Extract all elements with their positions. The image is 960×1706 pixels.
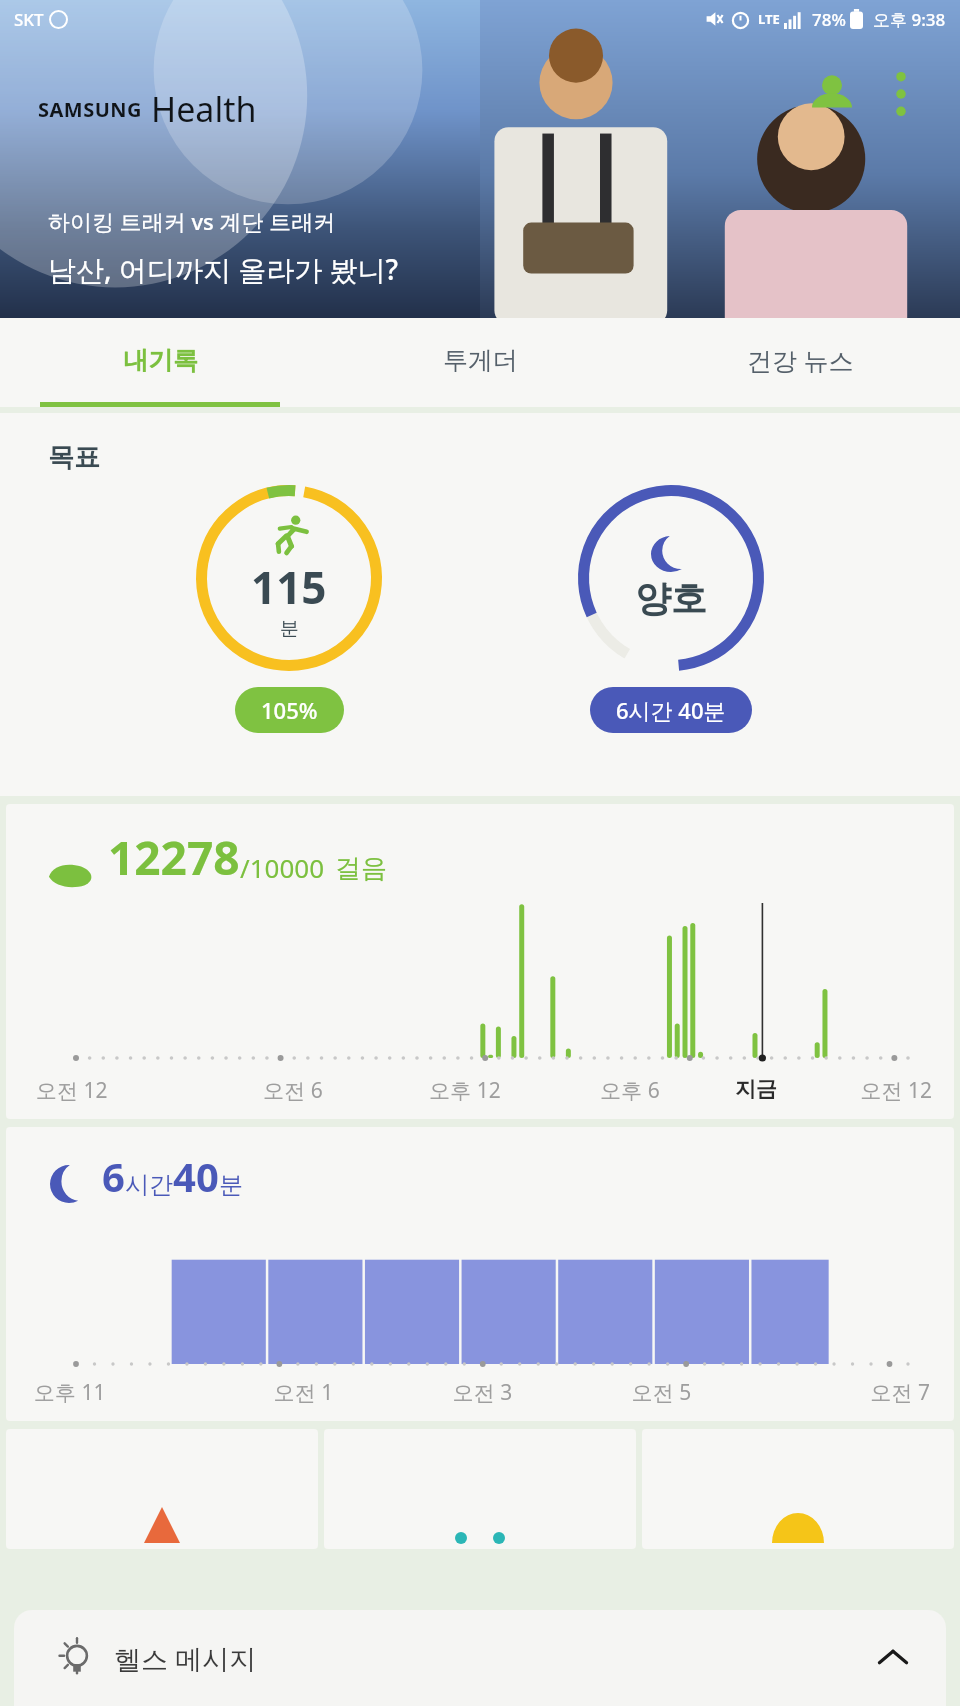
staticText: /10000 bbox=[240, 850, 325, 885]
staticText: 오후 11 bbox=[34, 1378, 214, 1407]
other: More options bbox=[894, 70, 908, 118]
staticText: 지금 bbox=[709, 1076, 803, 1102]
staticText: 오전 12 bbox=[36, 1076, 207, 1105]
button[interactable]: 건강 뉴스 bbox=[640, 318, 960, 402]
staticText: 오전 1 bbox=[214, 1378, 393, 1407]
staticText: 목표 bbox=[48, 441, 100, 474]
staticText: 남산, 어디까지 올라가 봤니? bbox=[48, 250, 399, 288]
staticText: 양호 bbox=[635, 576, 707, 621]
other: Expand bbox=[876, 1641, 910, 1675]
staticText: 6시간 40분 bbox=[616, 695, 726, 725]
staticText: 12278 bbox=[108, 826, 240, 889]
staticText: 분 bbox=[219, 1170, 243, 1200]
staticText: 시간 bbox=[125, 1170, 173, 1200]
staticText: 투게더 bbox=[443, 345, 518, 376]
button[interactable]: 목표 bbox=[0, 413, 960, 796]
staticText: 헬스 메시지 bbox=[114, 1640, 257, 1677]
staticText: 오전 6 bbox=[207, 1076, 379, 1105]
staticText: 오후 6 bbox=[551, 1076, 709, 1105]
staticText: 오전 3 bbox=[393, 1378, 572, 1407]
staticText: 하이킹 트래커 vs 계단 트래커 bbox=[48, 206, 336, 236]
staticText: 오후 12 bbox=[379, 1076, 551, 1105]
button[interactable]: 105% bbox=[235, 687, 344, 733]
staticText: 오전 12 bbox=[803, 1076, 932, 1105]
staticText: 분 bbox=[280, 617, 299, 641]
button[interactable]: 투게더 bbox=[320, 318, 640, 402]
staticText: 6 bbox=[102, 1149, 125, 1203]
button[interactable]: 내기록 bbox=[0, 318, 320, 402]
staticText: 내기록 bbox=[123, 345, 198, 376]
staticText: Health bbox=[151, 86, 257, 132]
staticText: 78% bbox=[812, 8, 846, 31]
button[interactable]: 6시간 40분 bbox=[590, 687, 752, 733]
staticText: SAMSUNG bbox=[38, 96, 143, 123]
button[interactable] bbox=[642, 1429, 954, 1549]
button[interactable]: 6 bbox=[6, 1127, 954, 1421]
staticText: 걸음 bbox=[335, 852, 387, 885]
button[interactable]: 12278 bbox=[6, 804, 954, 1119]
button[interactable] bbox=[6, 1429, 318, 1549]
staticText: 105% bbox=[261, 695, 318, 725]
staticText: SKT bbox=[14, 8, 44, 31]
staticText: 115 bbox=[251, 557, 327, 617]
button[interactable]: Tip bbox=[14, 1610, 946, 1706]
staticText: 오후 9:38 bbox=[873, 8, 946, 31]
staticText: LTE bbox=[758, 10, 780, 28]
staticText: 오전 7 bbox=[751, 1378, 930, 1407]
staticText: 건강 뉴스 bbox=[747, 343, 854, 377]
staticText: 오전 5 bbox=[572, 1378, 751, 1407]
other: Profile bbox=[812, 74, 852, 114]
other: Tip bbox=[58, 1639, 96, 1677]
button[interactable] bbox=[324, 1429, 636, 1549]
staticText: 40 bbox=[173, 1149, 219, 1203]
